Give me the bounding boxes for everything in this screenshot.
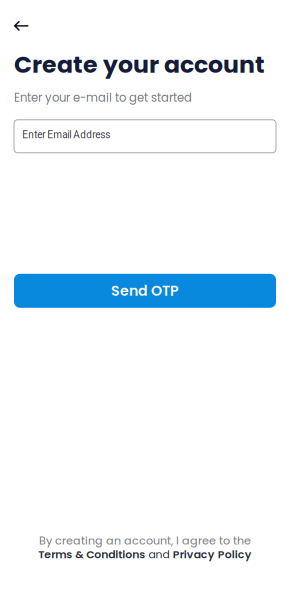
button[interactable]: Privacy Policy (173, 547, 252, 562)
staticText: and (148, 547, 169, 562)
staticText: Enter Email Address (22, 129, 110, 141)
staticText: By creating an account, I agree to the (39, 533, 251, 548)
button[interactable]: Terms & Conditions (38, 547, 145, 562)
staticText: Create your account (14, 48, 265, 81)
staticText: Privacy Policy (173, 547, 252, 562)
staticText: Send OTP (111, 281, 179, 301)
button[interactable]: Send OTP (14, 274, 276, 308)
button[interactable]: Back (14, 15, 44, 37)
button[interactable]: Enter Email Address (14, 120, 276, 153)
staticText: Enter your e-mail to get started (14, 89, 192, 106)
staticText: Terms & Conditions (38, 547, 145, 562)
